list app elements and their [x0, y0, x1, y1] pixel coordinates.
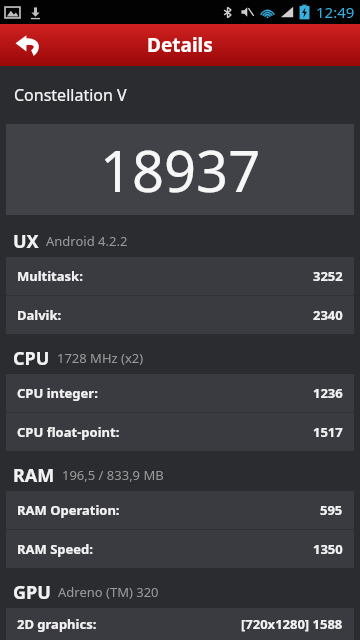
button[interactable]: 2D graphics:: [6, 608, 354, 640]
staticText: RAM Speed:: [17, 540, 93, 558]
button[interactable]: CPU integer:: [6, 374, 354, 412]
button[interactable]: Dalvik:: [6, 296, 354, 334]
button[interactable]: RAM Operation:: [6, 491, 354, 529]
staticText: 1728 MHz (x2): [57, 349, 144, 367]
staticText: RAM Operation:: [17, 501, 120, 519]
staticText: Android 4.2.2: [46, 232, 128, 250]
staticText: CPU: [13, 346, 50, 371]
staticText: 2340: [313, 306, 343, 324]
button[interactable]: CPU float-point:: [6, 413, 354, 451]
staticText: 196,5 / 833,9 MB: [62, 466, 164, 484]
staticText: 18937: [100, 132, 261, 208]
staticText: 1236: [313, 384, 343, 402]
staticText: Dalvik:: [17, 306, 62, 324]
staticText: 3252: [313, 267, 343, 285]
staticText: 1517: [313, 423, 343, 441]
staticText: CPU float-point:: [17, 423, 120, 441]
staticText: [720x1280] 1588: [241, 615, 343, 633]
button[interactable]: 18937: [6, 124, 354, 215]
staticText: Details: [147, 32, 213, 58]
staticText: CPU integer:: [17, 384, 98, 402]
staticText: Constellation V: [14, 84, 127, 106]
button[interactable]: Multitask:: [6, 257, 354, 295]
staticText: Adreno (TM) 320: [58, 583, 159, 601]
staticText: 12:49: [316, 2, 355, 22]
staticText: 1350: [313, 540, 343, 558]
staticText: 595: [320, 501, 343, 519]
staticText: RAM: [13, 463, 55, 488]
staticText: Multitask:: [17, 267, 83, 285]
staticText: UX: [13, 229, 39, 254]
button[interactable]: Back: [0, 24, 56, 66]
button[interactable]: RAM Speed:: [6, 530, 354, 568]
staticText: GPU: [13, 580, 51, 605]
staticText: 2D graphics:: [17, 615, 97, 633]
